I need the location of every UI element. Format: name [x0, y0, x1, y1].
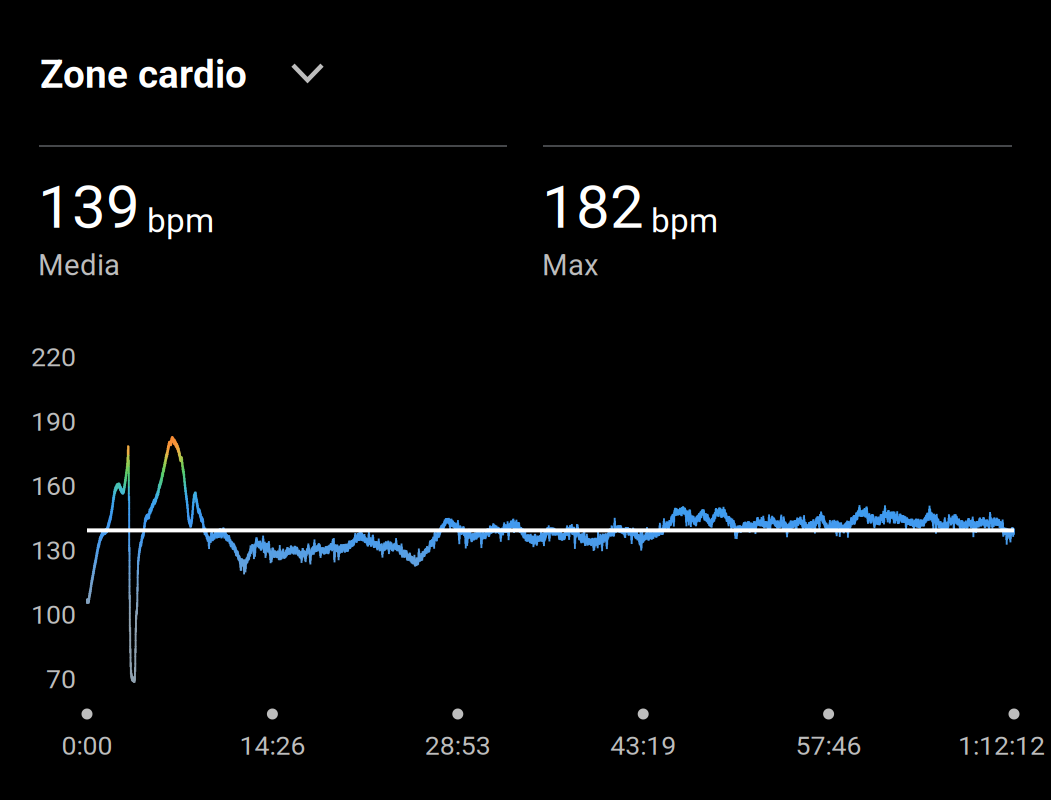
staticText: bpm — [651, 201, 718, 240]
staticText: bpm — [147, 201, 214, 240]
staticText: 139 — [38, 172, 140, 242]
button[interactable]: Zone cardio — [38, 52, 324, 97]
staticText: 14:26 — [239, 730, 305, 761]
staticText: 100 — [31, 599, 76, 630]
staticText: Zone cardio — [40, 52, 247, 97]
staticText: Max — [542, 248, 599, 282]
staticText: 43:19 — [610, 730, 676, 761]
staticText: 160 — [31, 470, 76, 502]
staticText: 220 — [31, 341, 76, 373]
staticText: 70 — [46, 663, 76, 695]
staticText: Media — [38, 248, 120, 282]
staticText: 182 — [542, 172, 644, 242]
staticText: 1:12:12 — [958, 730, 1045, 761]
staticText: 0:00 — [61, 730, 112, 761]
staticText: 28:53 — [425, 730, 491, 761]
staticText: 190 — [31, 406, 76, 437]
staticText: 57:46 — [796, 730, 862, 761]
staticText: 130 — [31, 535, 76, 566]
